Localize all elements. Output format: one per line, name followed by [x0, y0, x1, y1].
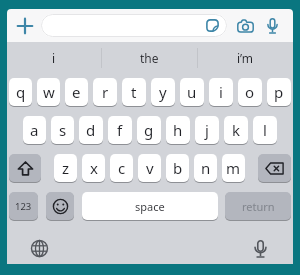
staticText: i — [52, 50, 56, 66]
button[interactable]: w — [37, 78, 60, 107]
button[interactable]: q — [9, 78, 32, 107]
button[interactable]: e — [65, 78, 88, 107]
button[interactable]: b — [166, 154, 189, 183]
staticText: z — [62, 158, 70, 178]
staticText: n — [201, 158, 211, 178]
button[interactable]: c — [110, 154, 133, 183]
staticText: o — [245, 82, 255, 102]
staticText: f — [117, 120, 123, 140]
staticText: q — [16, 82, 26, 102]
button[interactable] — [7, 9, 41, 42]
button[interactable]: n — [194, 154, 217, 183]
button[interactable] — [9, 154, 41, 183]
staticText: w — [43, 82, 55, 102]
button[interactable]: h — [166, 116, 190, 145]
button[interactable] — [227, 9, 263, 42]
button[interactable]: t — [122, 78, 146, 107]
button[interactable]: u — [180, 78, 204, 107]
button[interactable]: i’m — [198, 42, 293, 74]
button[interactable]: s — [51, 116, 74, 145]
staticText: l — [263, 120, 267, 140]
staticText: r — [102, 82, 109, 102]
staticText: return — [242, 199, 275, 214]
button[interactable]: a — [23, 116, 46, 145]
button[interactable]: p — [267, 78, 291, 107]
button[interactable] — [206, 19, 219, 32]
staticText: e — [72, 82, 81, 102]
staticText: u — [187, 82, 197, 102]
staticText: a — [30, 120, 39, 140]
button[interactable]: f — [108, 116, 132, 145]
button[interactable] — [46, 192, 74, 221]
button[interactable]: the — [102, 42, 197, 74]
button[interactable] — [254, 240, 267, 258]
button[interactable]: i — [7, 42, 101, 74]
button[interactable]: l — [253, 116, 277, 145]
button[interactable]: y — [151, 78, 175, 107]
staticText: i — [219, 82, 223, 102]
staticText: 123 — [15, 200, 32, 213]
button[interactable]: 123 — [9, 192, 38, 221]
button[interactable]: r — [93, 78, 117, 107]
button[interactable]: k — [224, 116, 248, 145]
button[interactable]: g — [137, 116, 161, 145]
staticText: p — [274, 82, 284, 102]
staticText: x — [90, 158, 98, 178]
button[interactable]: return — [225, 192, 291, 221]
button[interactable] — [263, 9, 281, 42]
staticText: s — [59, 120, 67, 140]
staticText: j — [205, 120, 209, 140]
staticText: v — [146, 158, 154, 178]
staticText: y — [159, 82, 167, 102]
button[interactable] — [258, 154, 291, 183]
staticText: i’m — [237, 50, 254, 66]
button[interactable]: o — [238, 78, 262, 107]
staticText: space — [135, 199, 165, 214]
button[interactable]: v — [138, 154, 161, 183]
staticText: g — [144, 120, 154, 140]
button[interactable]: m — [222, 154, 245, 183]
staticText: b — [173, 158, 183, 178]
staticText: k — [232, 120, 241, 140]
button[interactable] — [31, 240, 48, 257]
staticText: the — [140, 50, 159, 66]
staticText: h — [173, 120, 183, 140]
button[interactable]: z — [54, 154, 77, 183]
button[interactable]: x — [82, 154, 105, 183]
button[interactable]: space — [82, 192, 218, 221]
staticText: t — [131, 82, 137, 102]
button[interactable]: i — [209, 78, 233, 107]
staticText: d — [86, 120, 96, 140]
staticText: m — [226, 158, 241, 178]
staticText: c — [118, 158, 126, 178]
button[interactable]: d — [79, 116, 103, 145]
button[interactable] — [41, 14, 227, 37]
button[interactable]: j — [195, 116, 219, 145]
